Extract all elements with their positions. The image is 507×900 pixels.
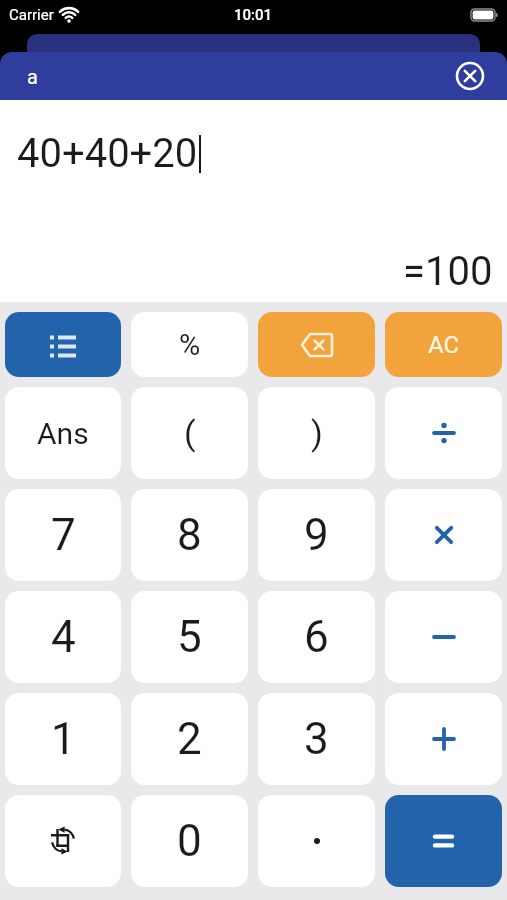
staticText: 8	[177, 509, 202, 561]
button[interactable]: 8	[131, 489, 248, 581]
button[interactable]: 9	[258, 489, 375, 581]
staticText: 6	[304, 611, 329, 663]
button[interactable]: 3	[258, 693, 375, 785]
button[interactable]: 0	[131, 795, 248, 887]
button[interactable]: )	[258, 387, 375, 479]
staticText: 1	[51, 713, 76, 765]
button[interactable]: a	[0, 52, 507, 100]
button[interactable]	[455, 61, 485, 91]
staticText: 3	[304, 713, 329, 765]
button[interactable]	[258, 795, 375, 887]
staticText: 5	[177, 611, 202, 663]
staticText: %	[179, 328, 201, 362]
button[interactable]	[385, 795, 502, 887]
staticText: AC	[428, 331, 460, 359]
button[interactable]	[385, 387, 502, 479]
staticText: 0	[177, 815, 202, 867]
staticText: 9	[304, 509, 329, 561]
button[interactable]	[385, 489, 502, 581]
staticText: 7	[51, 509, 76, 561]
button[interactable]	[5, 795, 121, 887]
button[interactable]	[385, 591, 502, 683]
staticText: 40+40+20	[17, 130, 198, 177]
staticText: Carrier	[9, 6, 54, 24]
button[interactable]: 2	[131, 693, 248, 785]
button[interactable]: 7	[5, 489, 121, 581]
button[interactable]: AC	[385, 312, 502, 377]
button[interactable]	[385, 693, 502, 785]
staticText: 10:01	[234, 6, 273, 24]
button[interactable]: %	[131, 312, 248, 377]
button[interactable]: (	[131, 387, 248, 479]
staticText: 2	[177, 713, 202, 765]
button[interactable]	[258, 312, 375, 377]
staticText: (	[184, 413, 196, 453]
button[interactable]: 1	[5, 693, 121, 785]
staticText: Ans	[37, 416, 89, 451]
button[interactable]: 6	[258, 591, 375, 683]
staticText: 4	[51, 611, 76, 663]
staticText: a	[27, 65, 38, 88]
button[interactable]: 4	[5, 591, 121, 683]
button[interactable]: Ans	[5, 387, 121, 479]
staticText: )	[311, 413, 323, 453]
button[interactable]	[5, 312, 121, 377]
button[interactable]: 5	[131, 591, 248, 683]
staticText: =100	[403, 248, 493, 295]
